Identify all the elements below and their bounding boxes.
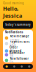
button[interactable]: New follower [3,57,33,62]
button[interactable]: Payment sent [3,40,33,46]
button[interactable]: Reminder [3,51,33,57]
button[interactable] [18,64,25,69]
staticText: 1h [10,53,14,56]
staticText: Payment sent [10,40,30,44]
button[interactable] [10,64,18,69]
button[interactable]: New message [3,34,33,40]
staticText: 18m [10,44,16,47]
staticText: 5h [10,60,14,64]
button[interactable]: Order shipped [3,46,33,51]
staticText: Order shipped [10,46,22,53]
staticText: Notifications [5,30,23,34]
staticText: 2m ago [10,38,20,41]
staticText: New message [10,34,30,38]
staticText: 3h [10,55,14,58]
staticText: Today's summary [5,23,30,26]
button[interactable] [3,64,10,69]
staticText: Hello, Jessica [3,5,22,19]
staticText: Good morning [3,1,24,5]
staticText: Reminder [10,51,25,55]
staticText: New follower [10,57,29,60]
button[interactable] [25,64,33,69]
